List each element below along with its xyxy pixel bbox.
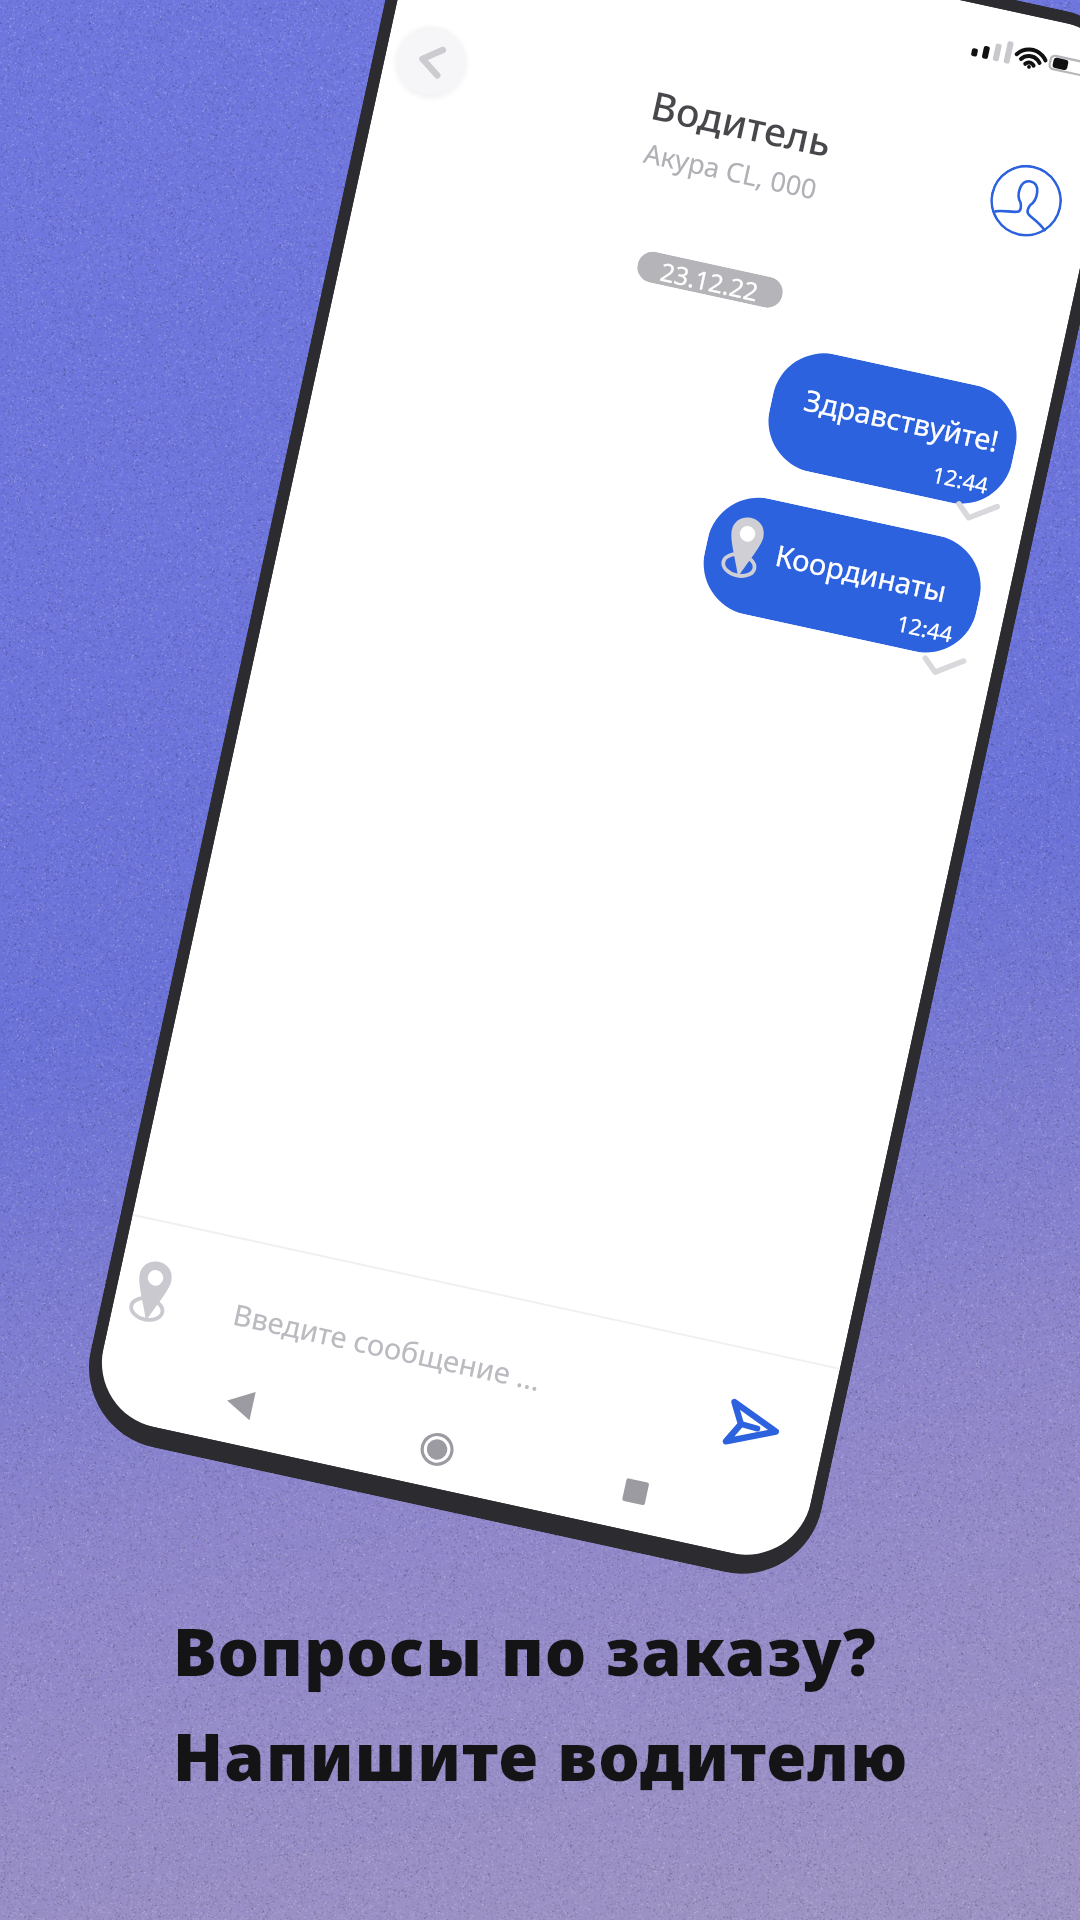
button[interactable]: Здравствуйте! <box>759 343 1026 514</box>
staticText: Акура CL, 000 <box>641 134 821 207</box>
button[interactable]: Координаты <box>694 488 991 662</box>
staticText: Координаты <box>772 535 951 610</box>
staticText: Введите сообщение ... <box>230 1294 545 1399</box>
staticText: 12:44 <box>894 607 956 649</box>
button[interactable]: 23.12.22 <box>634 249 786 311</box>
staticText: Здравствуйте! <box>801 380 1003 460</box>
button[interactable]: Back <box>391 20 472 101</box>
staticText: Вопросы по заказу? <box>173 1607 877 1696</box>
staticText: Водитель <box>647 77 837 168</box>
button[interactable]: Send <box>720 1397 784 1456</box>
button[interactable]: Send location <box>126 1255 175 1325</box>
staticText: 12:44 <box>930 458 992 500</box>
staticText: Напишите водителю <box>173 1712 909 1801</box>
button[interactable]: Profile <box>983 158 1069 244</box>
staticText: 23.12.22 <box>658 254 762 305</box>
